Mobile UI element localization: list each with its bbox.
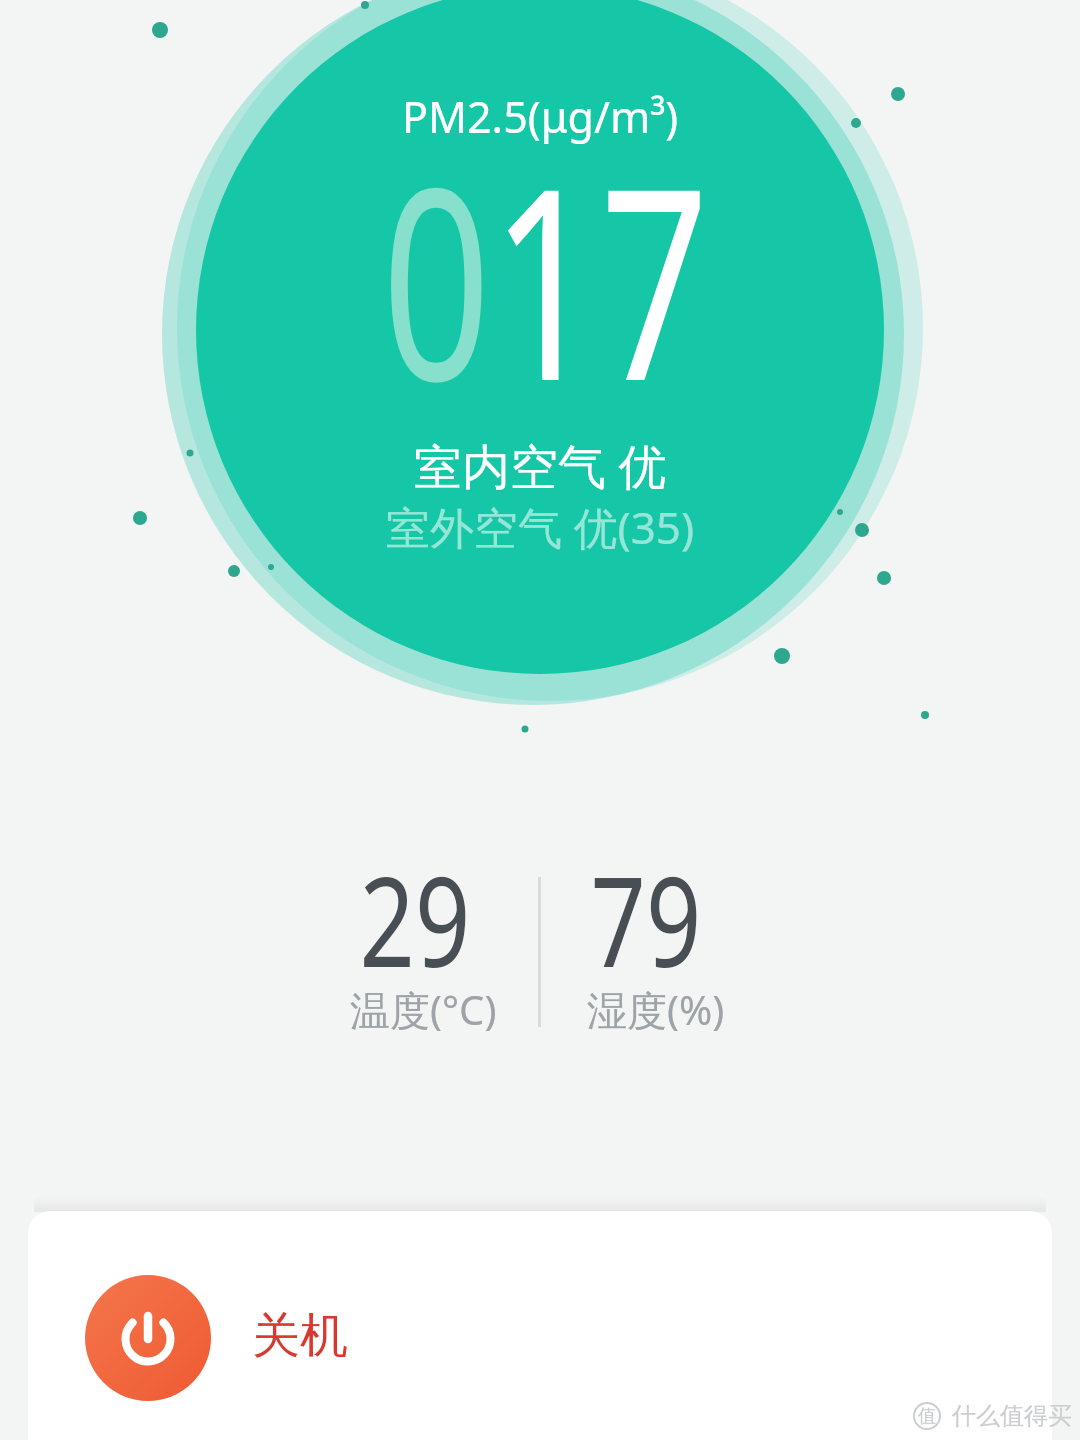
staticText: 温度(°C) [350,982,497,1037]
staticText: 79 [591,834,701,1003]
staticText: 关机 [252,1306,348,1366]
staticText: 017 [382,97,709,458]
staticText: 值 [918,1405,936,1428]
button[interactable]: 关机 [28,1211,1052,1440]
button[interactable] [85,1275,211,1401]
staticText: PM2.5(μg/m³) [402,87,679,146]
staticText: 室内空气 优 [414,433,667,499]
staticText: 湿度(%) [587,982,725,1037]
staticText: 29 [360,834,470,1003]
staticText: 什么值得买 [952,1401,1072,1431]
staticText: 室外空气 优(35) [386,497,695,557]
